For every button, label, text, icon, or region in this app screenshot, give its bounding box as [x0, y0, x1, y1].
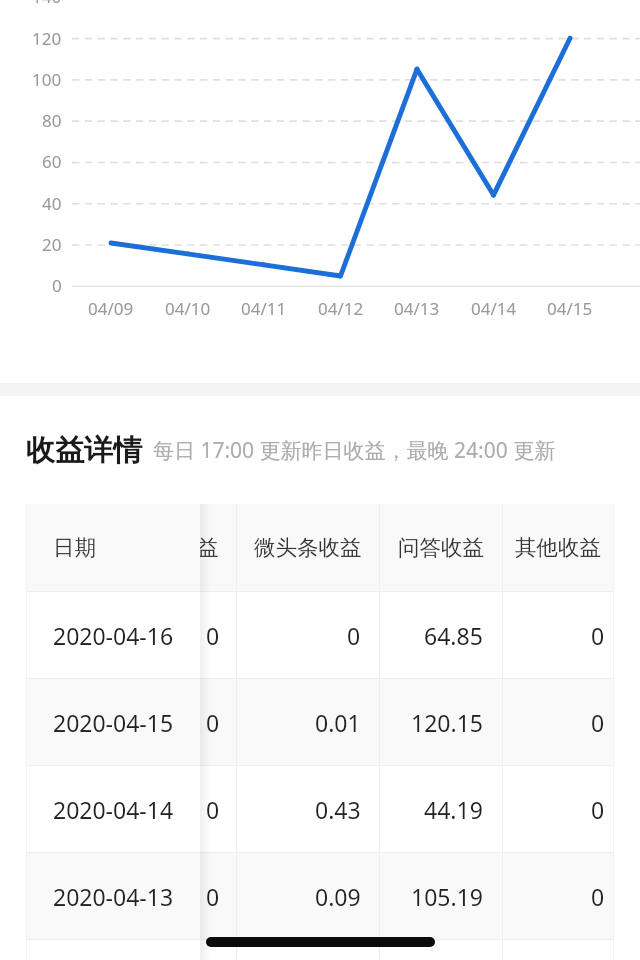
staticText: 105.19 — [411, 881, 483, 912]
staticText: 0.01 — [315, 707, 361, 738]
button[interactable]: 120.15 — [379, 679, 502, 765]
staticText: 0 — [206, 881, 220, 912]
staticText: 120 — [32, 27, 62, 50]
button[interactable]: 64.85 — [379, 592, 502, 678]
button[interactable]: 其他收益 — [502, 504, 614, 591]
button[interactable]: 小视频收益 — [93, 504, 236, 591]
button[interactable]: 44.19 — [379, 766, 502, 852]
staticText: 小视频收益 — [111, 534, 219, 561]
button[interactable]: 日期 — [26, 504, 200, 591]
staticText: 0.43 — [315, 794, 361, 825]
button[interactable]: 0 — [93, 679, 236, 765]
button[interactable]: 2020-04-14 — [26, 766, 200, 852]
staticText: 120.15 — [411, 707, 483, 738]
button[interactable]: 0 — [502, 853, 614, 939]
staticText: 04/14 — [471, 297, 517, 320]
button[interactable]: 0 — [502, 766, 614, 852]
button[interactable]: 105.19 — [379, 853, 502, 939]
button[interactable]: 0 — [93, 940, 236, 960]
staticText: 每日 17:00 更新昨日收益，最晚 24:00 更新 — [153, 436, 556, 465]
staticText: 80 — [42, 109, 62, 132]
staticText: 2020-04-13 — [53, 881, 174, 912]
staticText: 100 — [32, 68, 62, 91]
staticText: 0 — [347, 620, 361, 651]
staticText: 04/10 — [165, 297, 211, 320]
staticText: 微头条收益 — [254, 534, 362, 561]
button[interactable]: 0 — [93, 766, 236, 852]
button[interactable]: 0 — [93, 853, 236, 939]
button[interactable]: 2020-04-13 — [26, 853, 200, 939]
staticText: 问答收益 — [398, 534, 484, 561]
button[interactable]: 0 — [502, 592, 614, 678]
button[interactable]: 0 — [502, 679, 614, 765]
button[interactable]: 5.01 — [379, 940, 502, 960]
staticText: 2020-04-16 — [53, 620, 174, 651]
button[interactable]: 2020-04-16 — [26, 592, 200, 678]
staticText: 40 — [42, 192, 62, 215]
staticText: 0 — [206, 794, 220, 825]
staticText: 140 — [32, 0, 62, 8]
button[interactable]: 2020-04-15 — [26, 679, 200, 765]
staticText: 04/13 — [394, 297, 440, 320]
staticText: 04/15 — [547, 297, 593, 320]
other: 近七日收益折线图 — [0, 0, 640, 383]
button[interactable]: 0 — [93, 592, 236, 678]
button[interactable]: 0.09 — [236, 853, 379, 939]
staticText: 0 — [591, 794, 605, 825]
staticText: 0 — [591, 707, 605, 738]
staticText: 2020-04-14 — [53, 794, 174, 825]
staticText: 20 — [42, 233, 62, 256]
staticText: 日期 — [53, 534, 96, 561]
staticText: 64.85 — [424, 620, 483, 651]
staticText: 其他收益 — [515, 534, 601, 561]
button[interactable]: 0.05 — [236, 940, 379, 960]
staticText: 04/11 — [241, 297, 287, 320]
staticText: 0 — [52, 274, 62, 297]
staticText: 60 — [42, 150, 62, 173]
staticText: 0 — [206, 707, 220, 738]
button[interactable]: 问答收益 — [379, 504, 502, 591]
button[interactable]: 0.43 — [236, 766, 379, 852]
staticText: 44.19 — [424, 794, 483, 825]
staticText: 04/12 — [318, 297, 364, 320]
staticText: 0 — [591, 881, 605, 912]
staticText: 0.09 — [315, 881, 361, 912]
staticText: 0 — [591, 620, 605, 651]
staticText: 2020-04-15 — [53, 707, 174, 738]
button[interactable]: 0 — [236, 592, 379, 678]
button[interactable]: 微头条收益 — [236, 504, 379, 591]
button[interactable]: 0.01 — [236, 679, 379, 765]
staticText: 收益详情 — [26, 432, 142, 469]
staticText: 04/09 — [88, 297, 134, 320]
other: Home indicator — [206, 937, 435, 947]
staticText: 0 — [206, 620, 220, 651]
